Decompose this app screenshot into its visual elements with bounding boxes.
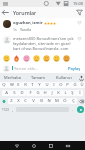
staticText: N	[47, 98, 51, 104]
staticText: E	[17, 82, 20, 88]
staticText: M	[55, 98, 59, 104]
button[interactable]: Recents	[42, 141, 59, 150]
button[interactable]: G	[34, 90, 41, 96]
button[interactable]: Ü	[78, 82, 85, 88]
button[interactable]: Ğ	[71, 82, 78, 88]
button[interactable]: P	[64, 82, 71, 88]
button[interactable]: A	[2, 90, 10, 96]
button[interactable]: metazen000 Bonusfinans'tan çok faydaland…	[0, 34, 85, 53]
button[interactable]: Y	[36, 82, 43, 88]
button[interactable]: E	[15, 82, 22, 88]
button[interactable]: B	[37, 98, 45, 104]
button[interactable]: Back	[0, 7, 11, 18]
button[interactable]: Q	[0, 82, 8, 88]
button[interactable]: Emoji reaction 7	[63, 55, 70, 62]
staticText: B	[40, 98, 43, 104]
staticText: metazen000 Bonusfinans'tan çok faydaland…	[13, 36, 75, 51]
button[interactable]: X	[15, 98, 22, 104]
staticText: D	[20, 90, 24, 96]
button[interactable]: Home	[25, 141, 42, 150]
button[interactable]: ,	[10, 105, 15, 114]
staticText: Ç	[72, 98, 75, 104]
staticText: P	[66, 82, 69, 88]
button[interactable]: K	[55, 90, 62, 96]
staticText: Y	[38, 82, 41, 88]
staticText: Yorum ekle...	[14, 66, 39, 71]
staticText: G	[36, 90, 40, 96]
button[interactable]: Keyboard	[59, 141, 76, 150]
staticText: Ş	[71, 90, 74, 96]
button[interactable]: M	[53, 98, 61, 104]
button[interactable]: Emoji reaction 6	[53, 55, 60, 62]
button[interactable]: R	[22, 82, 29, 88]
staticText: ,	[12, 107, 14, 113]
button[interactable]: T	[29, 82, 36, 88]
staticText: V	[32, 98, 35, 104]
button[interactable]: Backspace	[77, 97, 85, 105]
button[interactable]: N	[45, 98, 53, 104]
staticText: L	[64, 90, 67, 96]
staticText: O	[59, 82, 63, 88]
staticText: Tamam	[31, 75, 45, 80]
staticText: F	[29, 90, 32, 96]
button[interactable]: Emoji reaction 1	[3, 55, 10, 62]
staticText: C	[24, 98, 27, 104]
button[interactable]: D	[18, 90, 26, 96]
button[interactable]: J	[48, 90, 55, 96]
staticText: H	[43, 90, 47, 96]
button[interactable]: S	[10, 90, 18, 96]
button[interactable]: .	[70, 105, 75, 114]
staticText: Ü	[80, 82, 84, 88]
button[interactable]: İ	[76, 90, 83, 96]
staticText: S	[13, 90, 16, 96]
button[interactable]: ?123	[0, 105, 10, 114]
button[interactable]: W	[8, 82, 15, 88]
staticText: Z	[10, 98, 13, 104]
staticText: Q	[2, 82, 6, 88]
staticText: Ö	[63, 98, 67, 104]
button[interactable]: C	[22, 98, 29, 104]
button[interactable]: Shift	[0, 97, 8, 105]
button[interactable]: Kullanıcı	[51, 73, 77, 81]
button[interactable]: V	[29, 98, 37, 104]
staticText: 15:00	[73, 1, 83, 6]
button[interactable]: Back	[8, 141, 25, 150]
button[interactable]: Ç	[69, 98, 77, 104]
button[interactable]: Merhaba	[0, 73, 25, 81]
button[interactable]: H	[41, 90, 48, 96]
button[interactable]: Tamam	[25, 73, 51, 81]
staticText: I	[53, 82, 55, 88]
button[interactable]: Like	[77, 20, 82, 25]
button[interactable]: Send	[77, 106, 84, 113]
staticText: 1s	[13, 27, 17, 32]
button[interactable]: Voice input	[77, 73, 85, 81]
button[interactable]: L	[62, 90, 69, 96]
button[interactable]: Emoji reaction 3	[23, 55, 30, 62]
staticText: Paylaş	[68, 66, 81, 71]
staticText: oguzhan_izmir	[13, 20, 43, 26]
button[interactable]: Emoji reaction 5	[43, 55, 50, 62]
button[interactable]: Ş	[69, 90, 76, 96]
button[interactable]: Emoji reaction 2	[13, 55, 20, 62]
staticText: K	[57, 90, 60, 96]
button[interactable]: Filter	[74, 7, 85, 18]
button[interactable]: O	[57, 82, 64, 88]
button[interactable]: Yorum ekle...	[12, 63, 67, 73]
staticText: T	[31, 82, 34, 88]
button[interactable]: Like	[77, 36, 82, 41]
staticText: X	[17, 98, 20, 104]
button[interactable]: F	[26, 90, 34, 96]
staticText: ?123	[2, 108, 9, 112]
staticText: Ğ	[73, 82, 77, 88]
button[interactable]: U	[43, 82, 50, 88]
staticText: Yanıtla	[20, 27, 32, 32]
button[interactable]: oguzhan_izmir	[0, 18, 85, 34]
button[interactable]: Emoji reaction 4	[33, 55, 40, 62]
button[interactable]: Ö	[61, 98, 69, 104]
staticText: W	[10, 82, 14, 88]
button[interactable]: I	[50, 82, 57, 88]
button[interactable]: Z	[8, 98, 15, 104]
staticText: A	[5, 90, 8, 96]
button[interactable]: Paylaş	[67, 64, 82, 73]
